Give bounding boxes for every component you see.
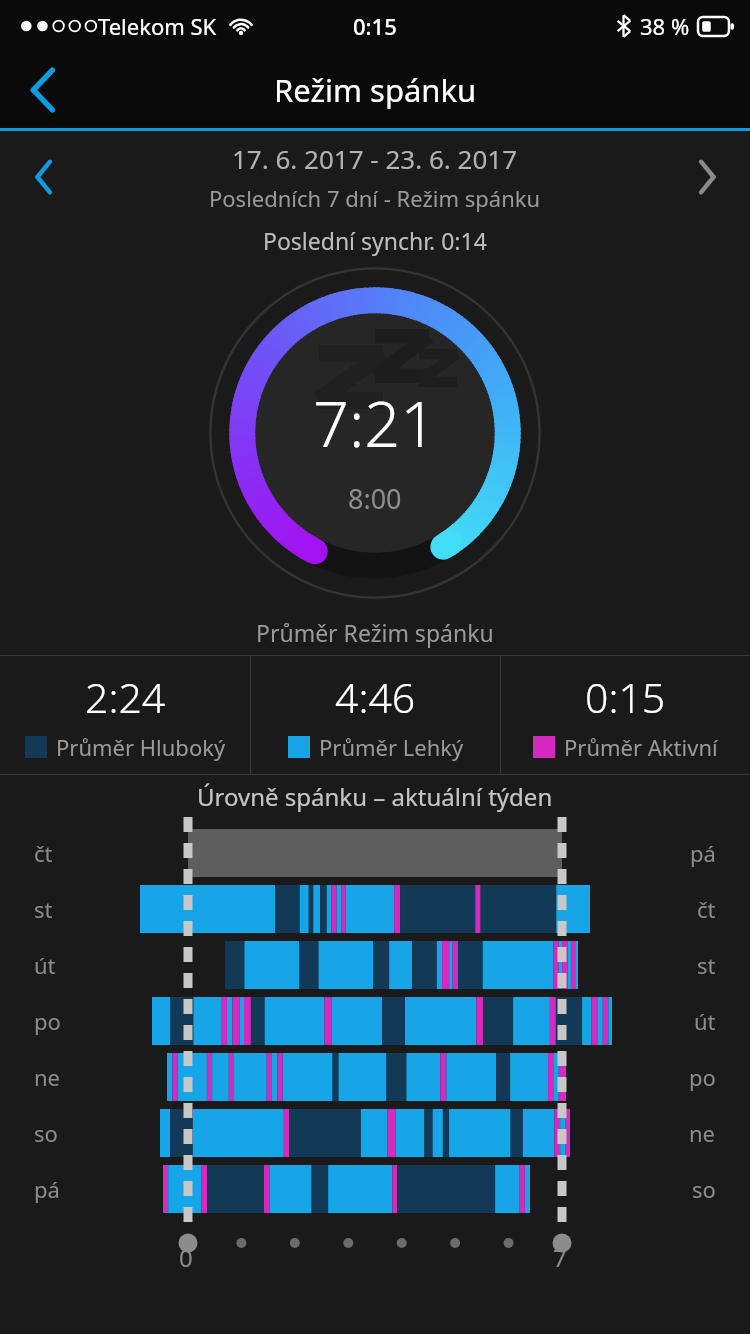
- button[interactable]: [0, 775, 750, 1334]
- staticText: 7:21: [313, 380, 437, 466]
- staticText: Telekom SK: [98, 11, 217, 41]
- staticText: ne: [34, 1062, 61, 1092]
- staticText: 0: [179, 1241, 193, 1274]
- staticText: Poslední synchr. 0:14: [263, 225, 487, 256]
- staticText: 17. 6. 2017 - 23. 6. 2017: [232, 141, 518, 176]
- button[interactable]: 0:15: [501, 656, 750, 774]
- staticText: Průměr Režim spánku: [256, 617, 494, 648]
- staticText: po: [34, 1006, 61, 1036]
- staticText: ne: [689, 1118, 716, 1148]
- staticText: 2:24: [85, 669, 166, 725]
- button[interactable]: Back: [0, 52, 86, 128]
- staticText: 0:15: [353, 11, 397, 41]
- button[interactable]: 4:46: [251, 656, 500, 774]
- button[interactable]: Previous week: [0, 134, 86, 220]
- staticText: st: [34, 894, 53, 924]
- staticText: Režim spánku: [274, 69, 477, 111]
- staticText: po: [689, 1062, 716, 1092]
- staticText: 7: [553, 1241, 567, 1274]
- staticText: čt: [34, 838, 53, 868]
- staticText: Posledních 7 dní - Režim spánku: [209, 183, 541, 213]
- staticText: Průměr Lehký: [319, 732, 464, 762]
- staticText: so: [692, 1174, 716, 1204]
- staticText: čt: [697, 894, 716, 924]
- staticText: 0:15: [585, 669, 666, 725]
- staticText: Průměr Hluboký: [56, 732, 226, 762]
- staticText: st: [697, 950, 716, 980]
- button[interactable]: 2:24: [0, 656, 250, 774]
- staticText: 38 %: [640, 11, 690, 41]
- staticText: út: [34, 950, 56, 980]
- staticText: 4:46: [335, 669, 416, 725]
- staticText: so: [34, 1118, 58, 1148]
- staticText: Úrovně spánku – aktuální týden: [197, 780, 553, 813]
- staticText: pá: [34, 1174, 60, 1204]
- staticText: pá: [690, 838, 716, 868]
- staticText: 8:00: [348, 480, 402, 517]
- staticText: Průměr Aktivní: [564, 732, 718, 762]
- staticText: út: [694, 1006, 716, 1036]
- button[interactable]: Next week: [664, 134, 750, 220]
